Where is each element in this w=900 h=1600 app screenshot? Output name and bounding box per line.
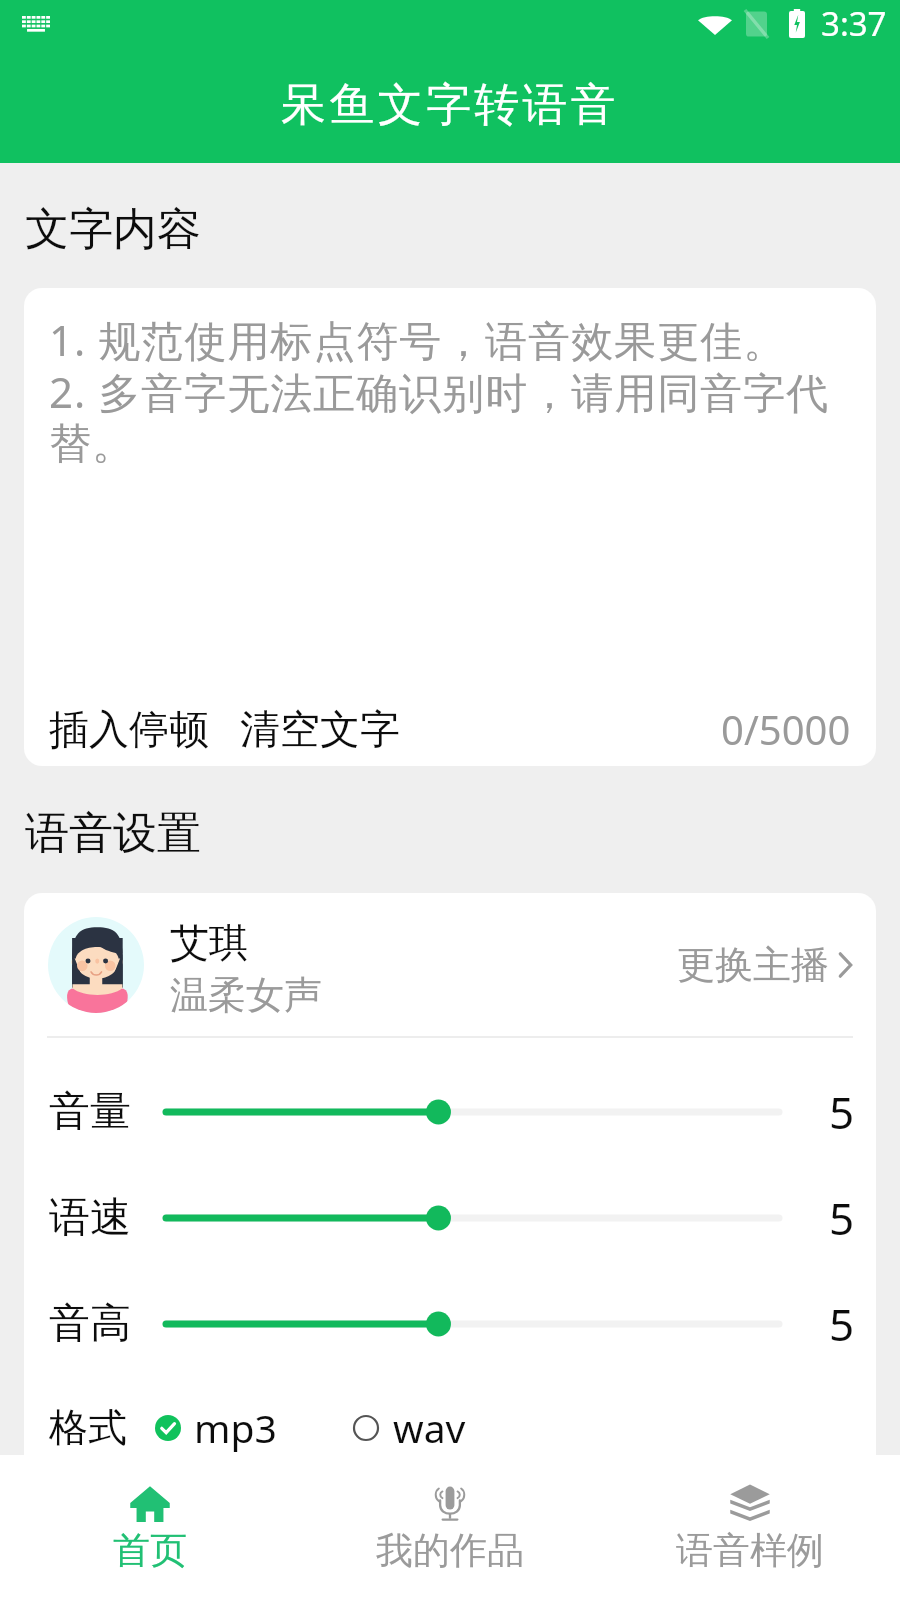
staticText: 文字内容	[25, 202, 201, 257]
button[interactable]: mp3	[155, 1387, 277, 1468]
staticText: 语速	[49, 1192, 131, 1244]
button[interactable]: 我的作品	[300, 1455, 600, 1600]
staticText: 音量	[49, 1086, 131, 1138]
other: Change narrator	[838, 951, 853, 979]
other: Keyboard	[22, 16, 50, 32]
button[interactable]: wav	[353, 1387, 466, 1468]
staticText: wav	[393, 1401, 466, 1454]
staticText: 更换主播	[677, 941, 829, 989]
staticText: 格式	[49, 1403, 127, 1452]
button[interactable]	[163, 1090, 782, 1134]
staticText: 5	[829, 1188, 855, 1248]
staticText: 0/5000	[721, 702, 851, 756]
staticText: 3:37	[821, 1, 887, 46]
button[interactable]: 首页	[0, 1455, 300, 1600]
button[interactable]	[163, 1196, 782, 1240]
staticText: 首页	[113, 1527, 187, 1574]
button[interactable]: 艾琪	[24, 893, 876, 1036]
staticText: 5	[829, 1294, 855, 1354]
button[interactable]: 清空文字	[240, 692, 400, 766]
staticText: 1. 规范使用标点符号，语音效果更佳。 2. 多音字无法正确识别时，请用同音字代…	[49, 311, 851, 471]
staticText: 插入停顿	[49, 704, 209, 754]
staticText: 温柔女声	[170, 971, 322, 1019]
button[interactable]: 插入停顿	[49, 692, 209, 766]
staticText: mp3	[194, 1401, 277, 1454]
staticText: 呆鱼文字转语音	[281, 77, 620, 134]
staticText: 艾琪	[170, 918, 248, 967]
staticText: 清空文字	[240, 704, 400, 754]
staticText: 5	[829, 1082, 855, 1142]
staticText: 语音样例	[676, 1527, 824, 1574]
button[interactable]	[163, 1302, 782, 1346]
staticText: 语音设置	[25, 806, 201, 861]
button[interactable]: 语音样例	[600, 1455, 900, 1600]
staticText: 音高	[49, 1298, 131, 1350]
staticText: 我的作品	[376, 1527, 524, 1574]
